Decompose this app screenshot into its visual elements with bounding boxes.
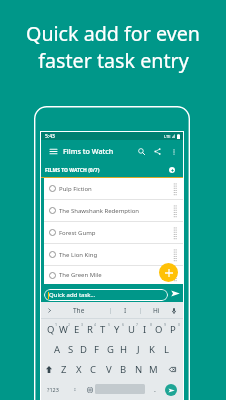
staticText: M	[149, 363, 158, 376]
button[interactable]: Y	[110, 319, 124, 339]
button[interactable]: Forest Gump	[44, 222, 183, 243]
button[interactable]: B	[116, 359, 131, 379]
button[interactable]: J	[131, 339, 145, 359]
button[interactable]: Voice input	[167, 302, 181, 319]
button[interactable]: Search	[135, 145, 148, 158]
button[interactable]: O	[152, 319, 166, 339]
button[interactable]: L	[159, 339, 173, 359]
staticText: I	[143, 323, 147, 336]
button[interactable]: Share	[151, 145, 164, 158]
button[interactable]: W	[57, 319, 70, 339]
staticText: U	[128, 323, 135, 336]
staticText: 9	[164, 322, 167, 327]
staticText: X	[76, 363, 82, 376]
staticText: Quick add for even	[26, 20, 200, 47]
button[interactable]: Navigation menu	[48, 146, 59, 157]
button[interactable]: Pulp Fiction	[44, 178, 183, 199]
button[interactable]: Z	[57, 359, 71, 379]
staticText: 0	[178, 322, 181, 327]
button[interactable]: The Green Mile	[44, 266, 183, 284]
staticText: The Lion King	[59, 251, 98, 259]
staticText: V	[106, 363, 112, 376]
staticText: Z	[61, 363, 67, 376]
button[interactable]: .	[149, 378, 161, 400]
button[interactable]: Add list	[166, 164, 177, 175]
button[interactable]: K	[145, 339, 159, 359]
button[interactable]: C	[86, 359, 101, 379]
button[interactable]: X	[71, 359, 86, 379]
staticText: G	[107, 343, 114, 356]
staticText: C	[90, 363, 97, 376]
button[interactable]: P	[166, 319, 180, 339]
button[interactable]: Change language	[83, 378, 96, 400]
button[interactable]: Quick add task...	[44, 289, 168, 301]
staticText: B	[120, 363, 127, 376]
staticText: .	[154, 385, 156, 395]
button[interactable]: S	[64, 339, 77, 359]
button[interactable]: The	[63, 302, 95, 319]
staticText: J	[137, 343, 140, 356]
staticText: P	[170, 323, 176, 336]
button[interactable]: D	[77, 339, 90, 359]
button[interactable]: Expand suggestions	[41, 302, 57, 319]
staticText: 7	[136, 322, 139, 327]
button[interactable]: Q	[44, 319, 57, 339]
staticText: The Green Mile	[59, 271, 102, 279]
button[interactable]: A	[51, 339, 64, 359]
button[interactable]: R	[83, 319, 96, 339]
button[interactable]: N	[131, 359, 146, 379]
staticText: 5:43	[45, 133, 55, 140]
staticText: A	[54, 343, 61, 356]
staticText: 8	[150, 322, 153, 327]
staticText: Hi	[153, 306, 160, 315]
button[interactable]: ?123	[42, 378, 64, 400]
staticText: LTE	[164, 134, 171, 139]
staticText: ?123	[47, 386, 59, 393]
staticText: W	[59, 323, 68, 336]
button[interactable]: Hi	[142, 302, 170, 319]
staticText: Quick add task...	[49, 291, 96, 299]
button[interactable]: M	[146, 359, 161, 379]
button[interactable]: Send	[168, 287, 182, 300]
button[interactable]: F	[90, 339, 103, 359]
button[interactable]: E	[70, 319, 83, 339]
staticText: 2	[68, 322, 71, 327]
button[interactable]: G	[103, 339, 117, 359]
button[interactable]: H	[117, 339, 131, 359]
button[interactable]: T	[96, 319, 110, 339]
staticText: Q	[47, 323, 55, 336]
button[interactable]: Shift	[41, 359, 57, 379]
staticText: Pulp Fiction	[59, 185, 92, 193]
button[interactable]: Add task	[159, 263, 178, 282]
button[interactable]: The Lion King	[44, 244, 183, 265]
button[interactable]: U	[124, 319, 138, 339]
staticText: S	[68, 343, 74, 356]
staticText: Films to Watch	[63, 146, 114, 156]
staticText: 6	[122, 322, 125, 327]
staticText: K	[149, 343, 155, 356]
staticText: R	[87, 323, 93, 336]
button[interactable]: Comma	[69, 378, 82, 400]
button[interactable]: I	[138, 319, 152, 339]
button[interactable]: More options	[167, 145, 180, 158]
button[interactable]: I	[112, 302, 138, 319]
staticText: The	[73, 306, 85, 315]
button[interactable]: V	[101, 359, 116, 379]
staticText: L	[164, 343, 169, 356]
staticText: Y	[114, 323, 120, 336]
button[interactable]: The Shawshank Redemption	[44, 200, 183, 221]
staticText: FILMS TO WATCH (0/7)	[45, 167, 100, 174]
staticText: O	[155, 323, 163, 336]
staticText: Forest Gump	[59, 229, 96, 237]
staticText: N	[135, 363, 143, 376]
button[interactable]: Send message	[165, 384, 177, 396]
staticText: E	[74, 323, 80, 336]
staticText: F	[94, 343, 99, 356]
staticText: I	[124, 306, 127, 315]
staticText: H	[120, 343, 128, 356]
staticText: 4	[94, 322, 97, 327]
staticText: 5	[108, 322, 111, 327]
button[interactable]: Backspace	[161, 359, 183, 379]
staticText: faster task entry	[38, 47, 189, 74]
